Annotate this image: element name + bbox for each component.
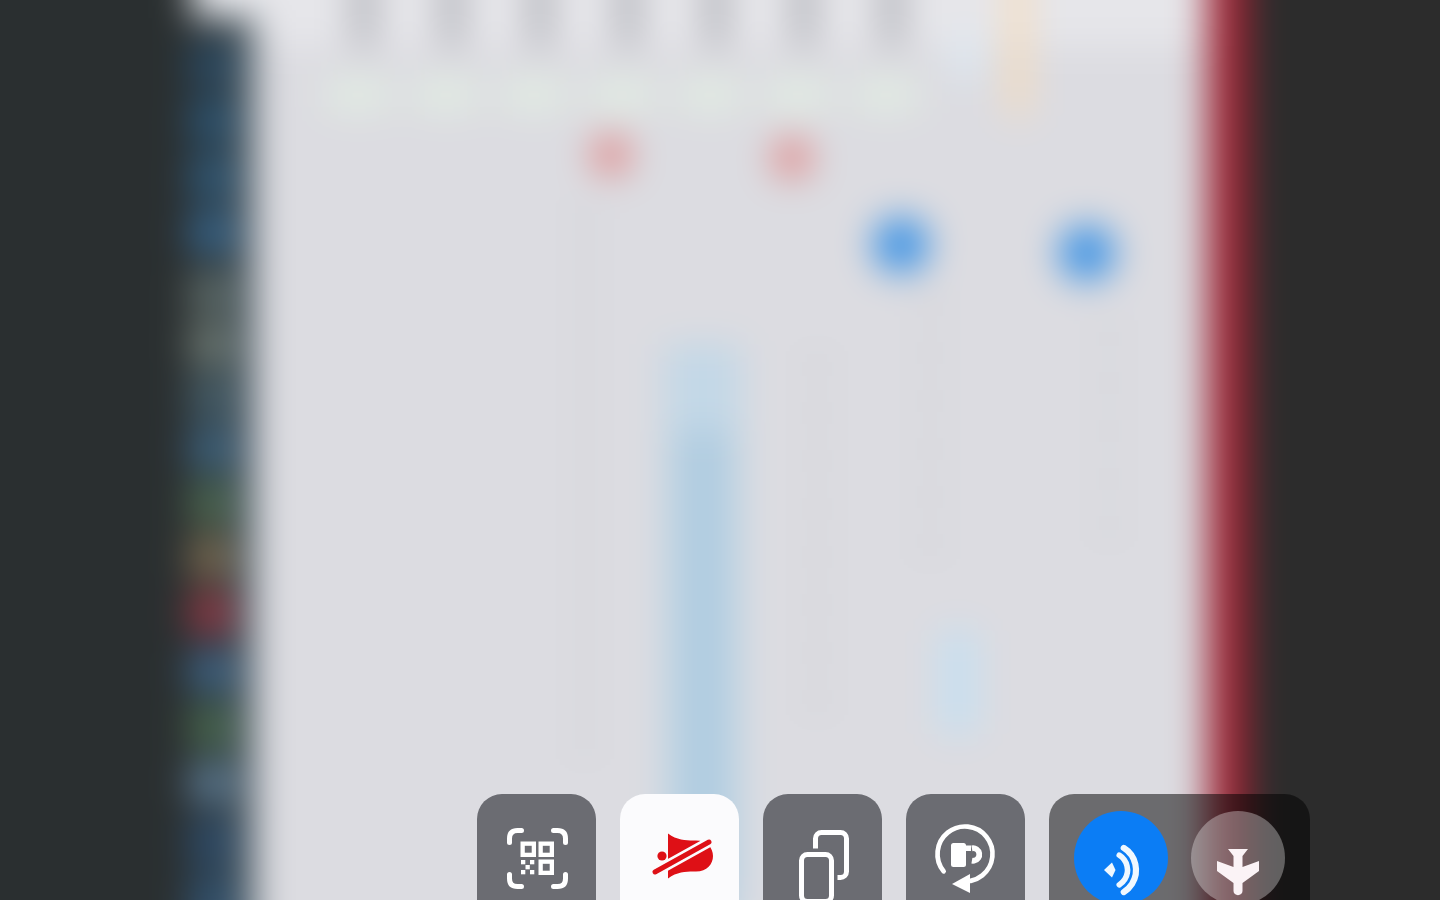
button[interactable]: Sound — [1074, 811, 1168, 900]
button[interactable]: Scan QR code — [477, 794, 596, 900]
button[interactable]: Screen rotate — [906, 794, 1025, 900]
button[interactable]: Mute notifications — [620, 794, 739, 900]
button[interactable]: Multi window — [763, 794, 882, 900]
button[interactable]: Airplane mode — [1191, 811, 1285, 900]
